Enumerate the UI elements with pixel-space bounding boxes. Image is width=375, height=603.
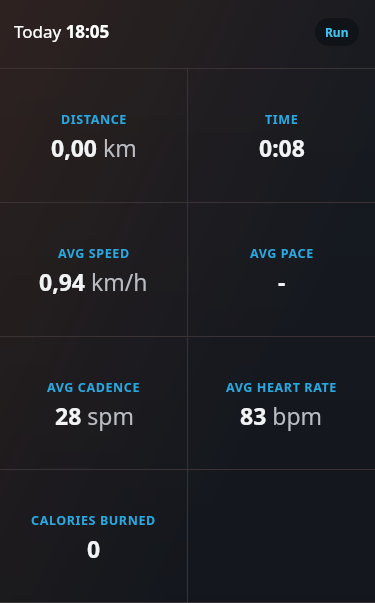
staticText: TIME	[265, 111, 299, 128]
button[interactable]: Run	[315, 18, 359, 46]
staticText: AVG CADENCE	[47, 379, 141, 396]
staticText: 0,94 km/h	[39, 266, 148, 297]
button[interactable]: AVG CADENCE	[0, 337, 187, 470]
button[interactable]: DISTANCE	[0, 69, 187, 203]
staticText: 83 bpm	[240, 400, 323, 431]
button[interactable]: AVG HEART RATE	[188, 337, 375, 470]
staticText: AVG HEART RATE	[226, 379, 337, 396]
button[interactable]: AVG PACE	[188, 203, 375, 337]
staticText: 28 spm	[55, 400, 134, 431]
staticText: Today 18:05	[14, 20, 110, 43]
staticText: -	[278, 266, 286, 297]
staticText: CALORIES BURNED	[31, 512, 156, 529]
staticText: DISTANCE	[61, 111, 127, 128]
staticText: 0:08	[259, 132, 305, 163]
staticText: AVG SPEED	[58, 245, 130, 262]
button[interactable]: AVG SPEED	[0, 203, 187, 337]
staticText: 0	[87, 533, 101, 564]
staticText: AVG PACE	[250, 245, 314, 262]
staticText: Run	[325, 24, 349, 40]
staticText: 0,00 km	[51, 132, 137, 163]
button[interactable]: TIME	[188, 69, 375, 203]
button[interactable]: CALORIES BURNED	[0, 470, 187, 603]
